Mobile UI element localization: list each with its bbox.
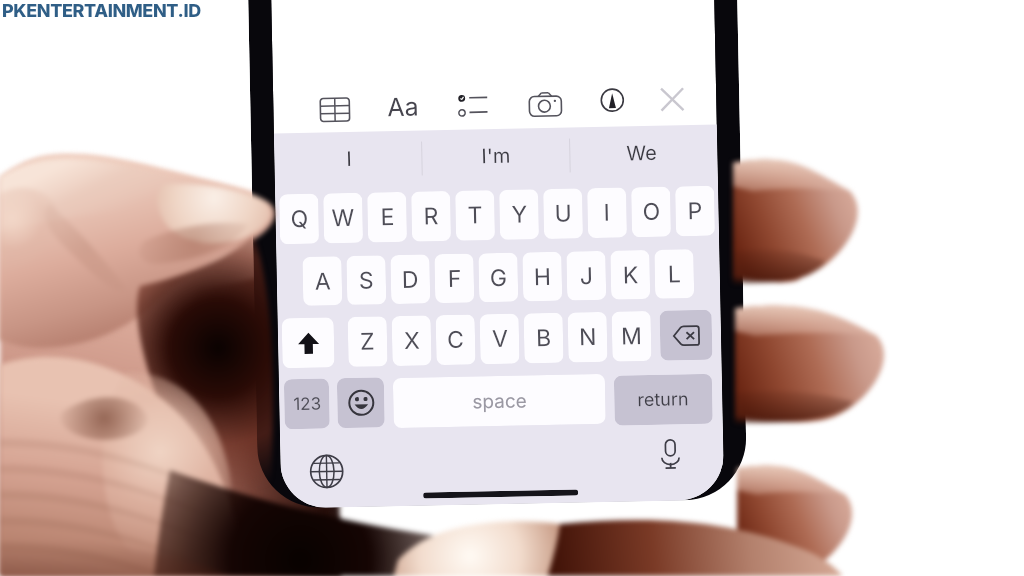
button[interactable]: Q bbox=[279, 194, 319, 244]
staticText: PKENTERTAINMENT.ID bbox=[2, 0, 201, 22]
button[interactable]: T bbox=[455, 190, 495, 241]
staticText: D bbox=[402, 266, 419, 294]
staticText: Z bbox=[360, 327, 375, 356]
button[interactable]: R bbox=[411, 191, 451, 242]
button[interactable]: M bbox=[611, 311, 651, 362]
button[interactable]: 123 bbox=[284, 378, 330, 429]
button[interactable]: I bbox=[304, 135, 395, 183]
button[interactable]: P bbox=[675, 186, 715, 236]
staticText: Aa bbox=[387, 91, 420, 122]
button[interactable]: F bbox=[434, 253, 474, 303]
button[interactable]: N bbox=[567, 312, 607, 363]
button[interactable]: Next keyboard bbox=[304, 449, 348, 493]
button[interactable]: We bbox=[596, 129, 687, 177]
staticText: We bbox=[626, 141, 658, 165]
staticText: S bbox=[359, 266, 374, 295]
button[interactable]: I bbox=[587, 187, 627, 238]
staticText: V bbox=[492, 325, 508, 353]
button[interactable]: Y bbox=[499, 189, 539, 240]
button[interactable]: Table bbox=[311, 89, 359, 131]
button[interactable]: V bbox=[480, 314, 520, 364]
button[interactable]: Markup bbox=[591, 78, 634, 122]
staticText: T bbox=[467, 201, 483, 230]
button[interactable]: return bbox=[614, 374, 713, 426]
staticText: X bbox=[404, 327, 420, 355]
button[interactable]: Checklist bbox=[448, 83, 497, 128]
staticText: A bbox=[315, 267, 331, 296]
button[interactable]: E bbox=[367, 192, 407, 243]
staticText: space bbox=[472, 389, 528, 413]
staticText: M bbox=[621, 322, 642, 350]
staticText: L bbox=[667, 260, 682, 289]
button[interactable]: Shift bbox=[282, 317, 335, 368]
button[interactable]: Close bbox=[652, 79, 693, 120]
staticText: 123 bbox=[293, 394, 321, 415]
staticText: U bbox=[554, 199, 573, 228]
button[interactable]: U bbox=[543, 188, 583, 239]
staticText: N bbox=[579, 323, 597, 351]
staticText: O bbox=[642, 198, 661, 226]
staticText: W bbox=[331, 204, 355, 232]
button[interactable]: Backspace bbox=[659, 310, 712, 361]
button[interactable]: space bbox=[393, 374, 606, 428]
button[interactable]: K bbox=[610, 250, 650, 300]
button[interactable]: G bbox=[478, 253, 518, 302]
button[interactable]: Z bbox=[348, 316, 388, 367]
staticText: E bbox=[380, 203, 395, 231]
staticText: H bbox=[533, 263, 552, 291]
staticText: R bbox=[423, 202, 439, 230]
staticText: J bbox=[579, 262, 594, 290]
staticText: I bbox=[603, 199, 611, 227]
staticText: B bbox=[536, 324, 552, 352]
staticText: I'm bbox=[481, 144, 511, 168]
button[interactable]: L bbox=[654, 249, 694, 299]
button[interactable]: O bbox=[631, 186, 671, 237]
button[interactable]: C bbox=[436, 314, 476, 365]
staticText: Y bbox=[511, 200, 528, 229]
button[interactable]: A bbox=[302, 256, 342, 306]
button[interactable]: Emoji bbox=[337, 377, 385, 428]
staticText: G bbox=[490, 264, 508, 292]
button[interactable]: D bbox=[390, 254, 430, 304]
staticText: K bbox=[622, 261, 639, 289]
staticText: F bbox=[448, 265, 462, 293]
staticText: return bbox=[637, 388, 689, 411]
button[interactable]: Dictation bbox=[649, 433, 692, 476]
button[interactable]: X bbox=[392, 315, 432, 366]
staticText: I bbox=[346, 147, 353, 171]
button[interactable]: Aa bbox=[381, 86, 426, 127]
button[interactable]: S bbox=[346, 255, 386, 305]
button[interactable]: H bbox=[522, 252, 562, 301]
staticText: Q bbox=[290, 205, 309, 233]
button[interactable]: W bbox=[323, 193, 363, 243]
button[interactable]: I'm bbox=[450, 132, 541, 180]
button[interactable]: B bbox=[523, 313, 563, 363]
staticText: C bbox=[447, 326, 464, 354]
button[interactable]: Camera bbox=[520, 82, 571, 125]
staticText: P bbox=[687, 197, 703, 225]
button[interactable]: J bbox=[566, 251, 606, 301]
